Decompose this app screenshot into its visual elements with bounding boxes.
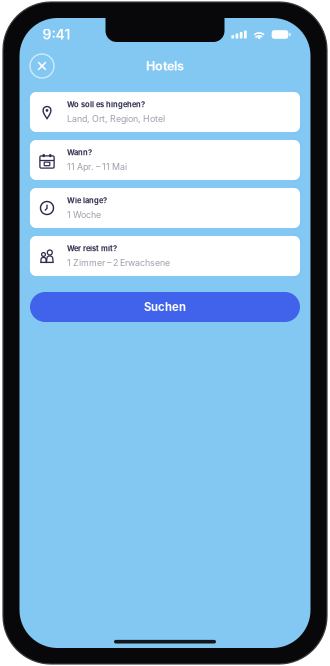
staticText: 9:41 [42,26,70,43]
button[interactable]: Wann? [30,140,300,180]
button[interactable]: Wo soll es hingehen? [30,92,300,132]
staticText: Hotels [146,58,184,74]
staticText: Suchen [144,300,186,314]
button[interactable]: Wie lange? [30,188,300,228]
button[interactable]: Suchen [30,292,300,322]
button[interactable]: Wer reist mit? [30,236,300,276]
staticText: 11 Apr. – 11 Mai [67,161,127,172]
staticText: 1 Zimmer – 2 Erwachsene [67,257,170,268]
button[interactable]: Close [30,54,54,78]
staticText: 1 Woche [67,209,101,220]
staticText: Land, Ort, Region, Hotel [67,113,165,124]
staticText: Wie lange? [67,196,107,205]
staticText: Wo soll es hingehen? [67,100,145,109]
staticText: Wer reist mit? [67,244,117,253]
staticText: Wann? [67,148,92,157]
